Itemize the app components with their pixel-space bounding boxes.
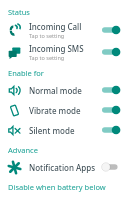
staticText: Incoming Call: [29, 21, 82, 32]
button[interactable]: On: [102, 124, 121, 136]
button[interactable]: Normal mode: [0, 80, 128, 100]
staticText: Enable for: [8, 68, 44, 78]
button[interactable]: Off: [102, 161, 121, 173]
staticText: Incoming SMS: [29, 43, 84, 54]
button[interactable]: On: [102, 84, 121, 96]
staticText: Tap to setting: [29, 54, 65, 61]
button[interactable]: On: [102, 104, 121, 116]
button[interactable]: Silent mode: [0, 120, 128, 140]
staticText: Silent mode: [29, 125, 75, 136]
button[interactable]: On: [102, 46, 121, 58]
staticText: Tap to setting: [29, 32, 65, 39]
button[interactable]: On: [102, 24, 121, 36]
button[interactable]: Incoming SMS: [0, 41, 128, 63]
staticText: Vibrate mode: [29, 105, 81, 116]
button[interactable]: Notification Apps: [0, 157, 128, 177]
button[interactable]: Vibrate mode: [0, 100, 128, 120]
button[interactable]: Incoming Call: [0, 19, 128, 41]
staticText: Advance: [8, 145, 38, 155]
staticText: Status: [8, 7, 30, 17]
staticText: Normal mode: [29, 85, 82, 96]
staticText: Disable when battery below: [8, 182, 106, 192]
staticText: Notification Apps: [29, 162, 96, 173]
